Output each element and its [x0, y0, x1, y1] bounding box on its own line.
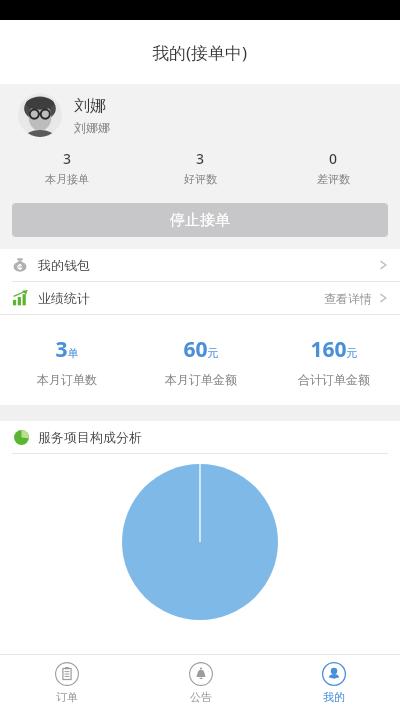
staticText: 本月接单: [45, 172, 89, 186]
staticText: 差评数: [317, 172, 350, 186]
staticText: 查看详情: [324, 291, 372, 306]
staticText: 好评数: [184, 172, 217, 186]
staticText: 订单: [56, 690, 78, 704]
staticText: 本月订单数: [37, 372, 97, 387]
staticText: 我的: [323, 690, 345, 704]
staticText: 60元: [183, 335, 219, 364]
button[interactable]: 我的: [267, 655, 400, 711]
button[interactable]: 公告: [134, 655, 267, 711]
staticText: 160元: [310, 335, 358, 364]
staticText: 合计订单金额: [298, 372, 370, 387]
staticText: 0: [329, 149, 338, 168]
button[interactable]: 订单: [0, 655, 134, 711]
staticText: 停止接单: [170, 211, 230, 230]
staticText: 3: [63, 149, 72, 168]
staticText: 本月订单金额: [165, 372, 237, 387]
staticText: 我的(接单中): [152, 41, 248, 64]
staticText: 业绩统计: [38, 290, 90, 306]
button[interactable]: 停止接单: [12, 203, 388, 237]
button[interactable]: 业绩统计: [0, 282, 400, 314]
staticText: 3: [196, 149, 205, 168]
staticText: 刘娜: [74, 96, 106, 116]
button[interactable]: 我的钱包: [0, 249, 400, 281]
staticText: 公告: [190, 690, 212, 704]
staticText: 3单: [55, 335, 79, 364]
staticText: 我的钱包: [38, 257, 90, 273]
staticText: 服务项目构成分析: [38, 429, 142, 445]
staticText: 刘娜娜: [74, 120, 110, 135]
